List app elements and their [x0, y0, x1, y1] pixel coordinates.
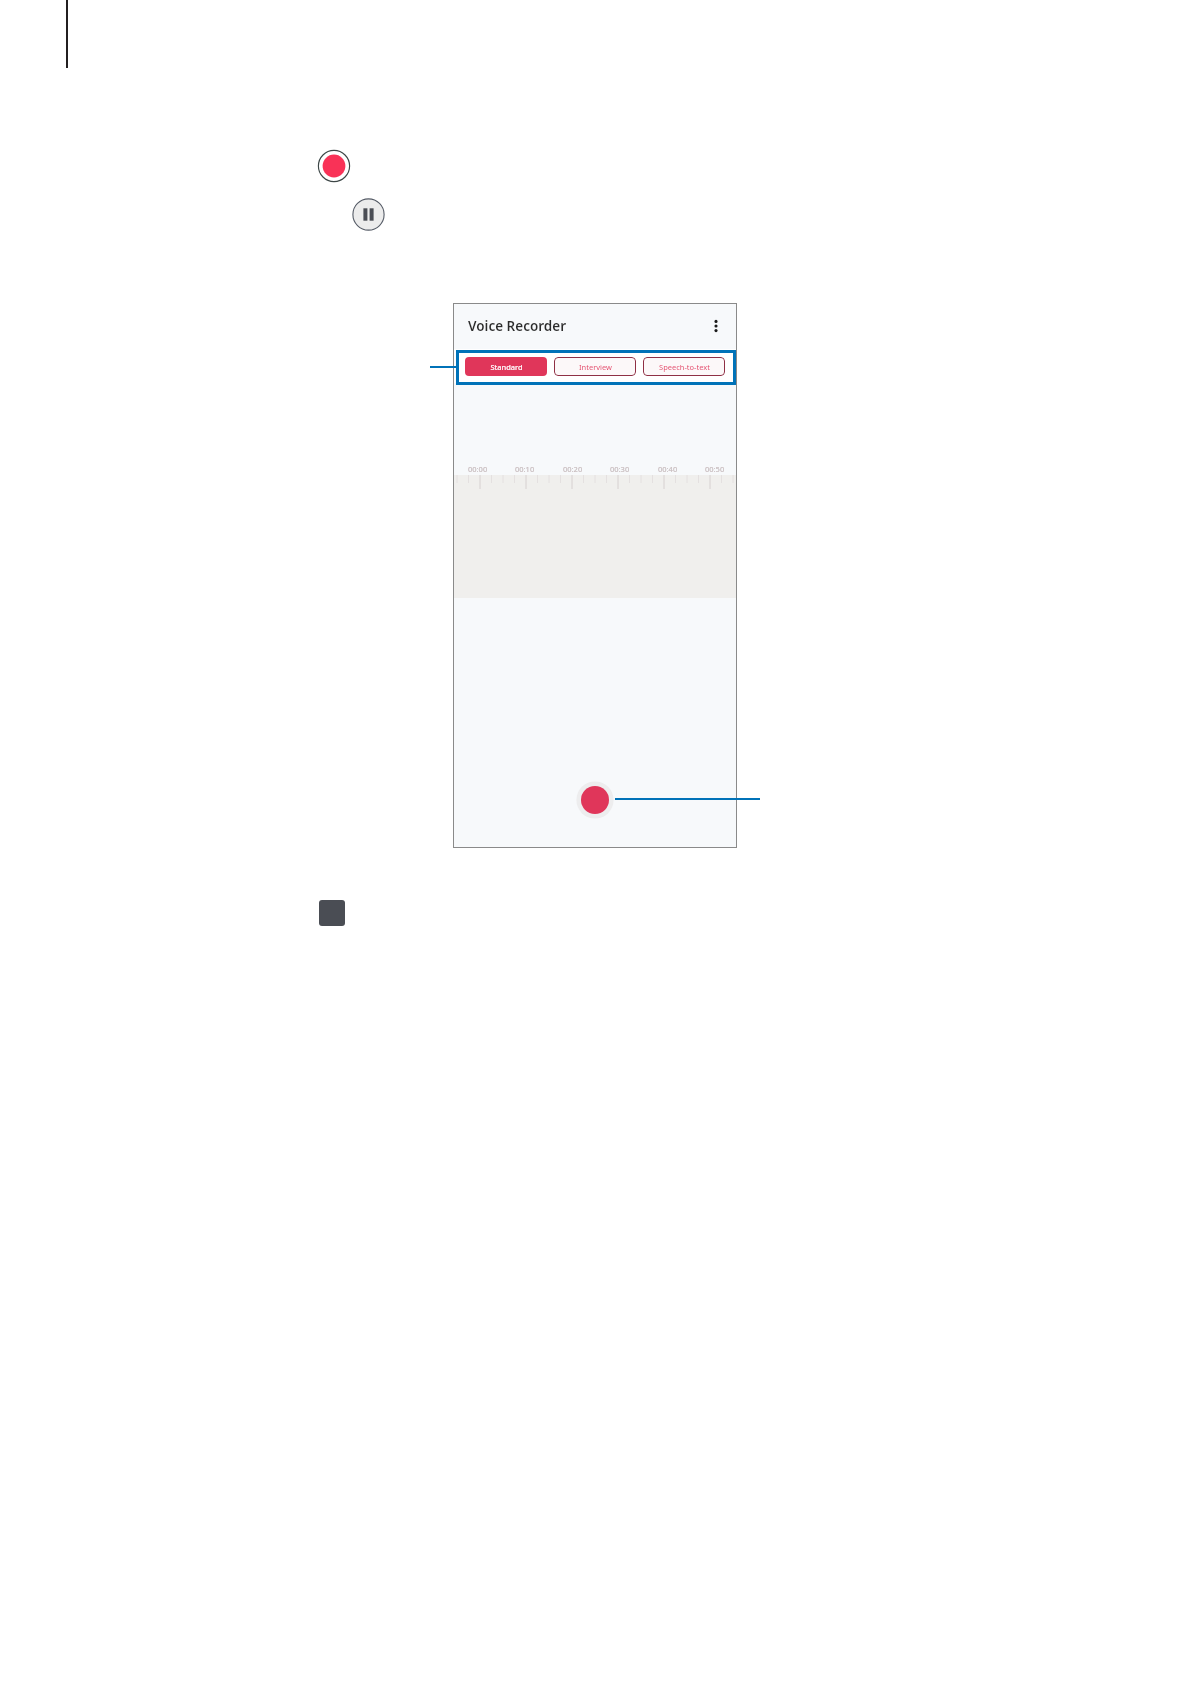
staticText: 00:10 [515, 464, 535, 474]
staticText: Interview [579, 362, 612, 372]
button[interactable]: Pause [352, 198, 385, 231]
staticText: Standard [490, 362, 523, 372]
staticText: Speech-to-text [659, 362, 710, 372]
button[interactable]: Start recording [574, 779, 616, 821]
button[interactable]: Interview [554, 357, 636, 376]
staticText: 00:20 [563, 464, 583, 474]
button[interactable]: Stop [319, 900, 345, 926]
button[interactable]: More options [704, 314, 728, 338]
staticText: 00:30 [610, 464, 630, 474]
button[interactable]: Standard [465, 357, 547, 376]
button[interactable]: Record [318, 150, 350, 182]
button[interactable]: Speech-to-text [643, 357, 725, 376]
staticText: 00:00 [468, 464, 488, 474]
staticText: 00:40 [658, 464, 678, 474]
staticText: Voice Recorder [468, 317, 567, 335]
staticText: 00:50 [705, 464, 725, 474]
